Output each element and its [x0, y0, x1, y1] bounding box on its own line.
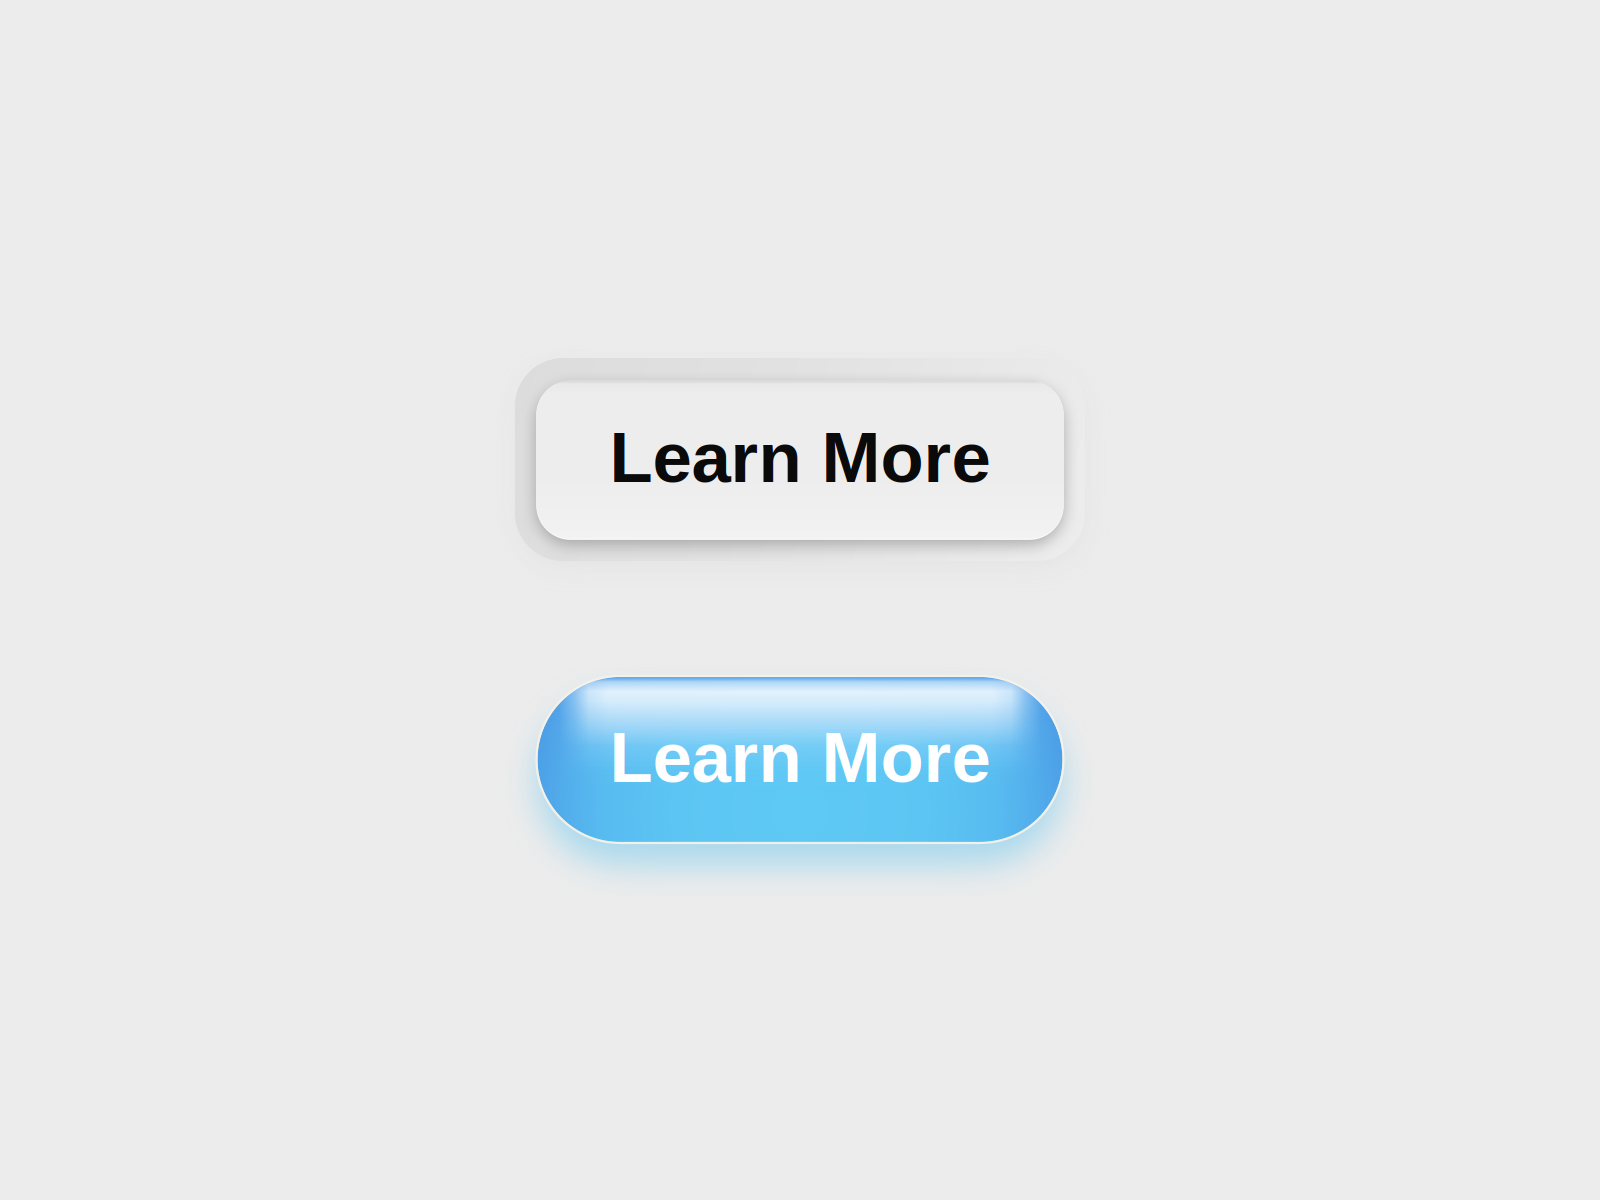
- button[interactable]: Learn More: [420, 319, 1180, 599]
- staticText: Learn More: [609, 418, 990, 497]
- button[interactable]: Learn More: [420, 629, 1180, 889]
- staticText: Learn More: [609, 718, 990, 797]
